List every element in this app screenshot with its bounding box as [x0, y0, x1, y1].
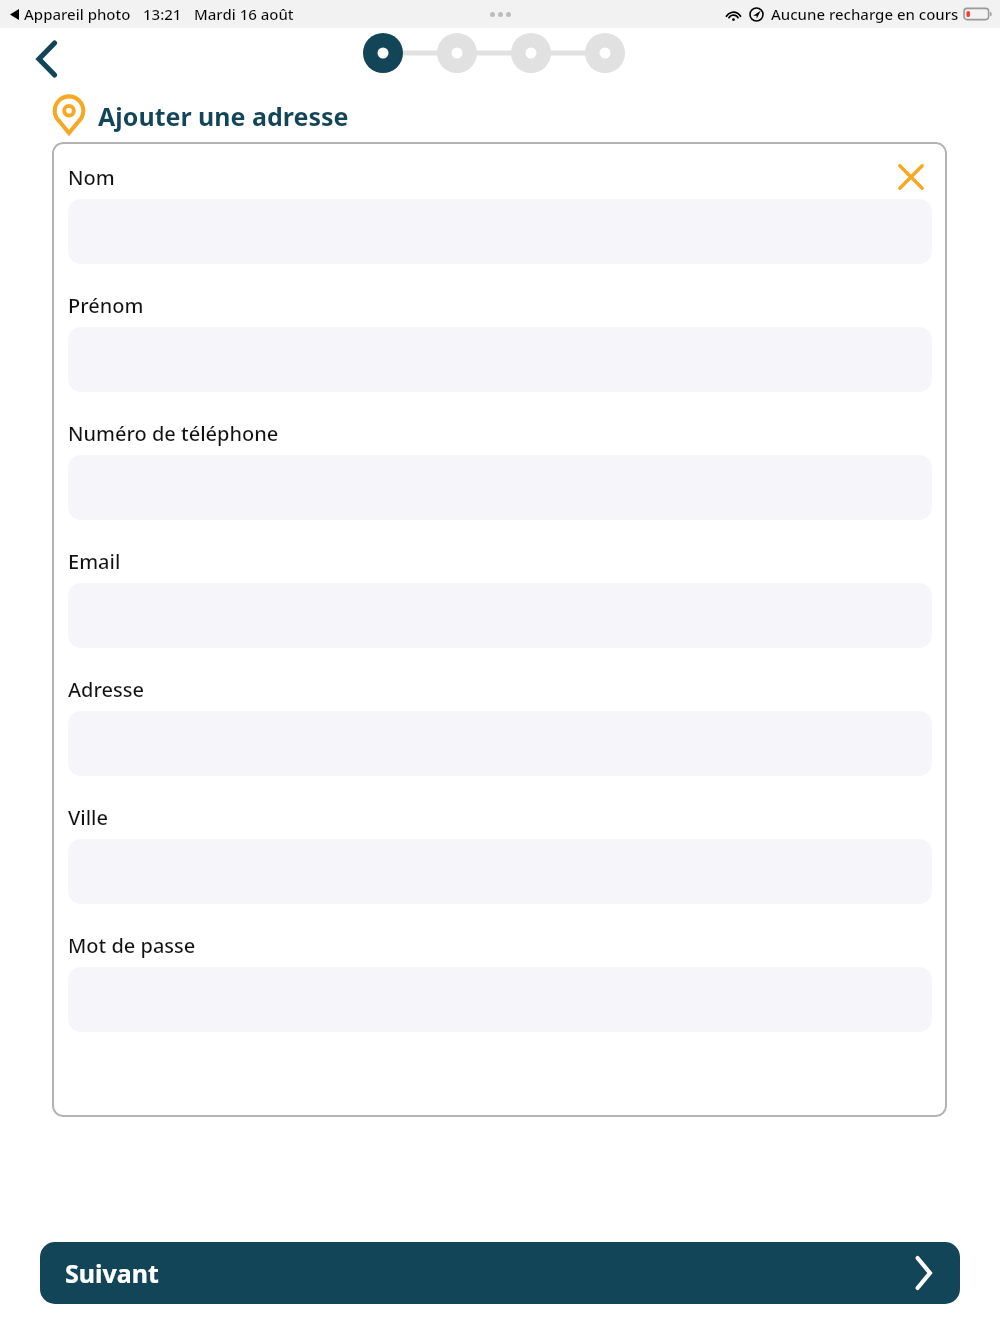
staticText: Nom [68, 164, 115, 190]
staticText: Aucune recharge en cours [771, 4, 959, 24]
staticText: Suivant [65, 1256, 159, 1290]
staticText: Appareil photo [24, 4, 131, 24]
staticText: Mardi 16 août [194, 4, 294, 24]
staticText: Numéro de téléphone [68, 420, 279, 446]
button[interactable]: Fermer [890, 164, 932, 190]
staticText: 13:21 [143, 4, 182, 24]
staticText: Mot de passe [68, 932, 196, 958]
staticText: Prénom [68, 292, 144, 318]
staticText: Ville [68, 804, 108, 830]
staticText: Email [68, 548, 121, 574]
button[interactable]: Suivant [40, 1242, 960, 1304]
staticText: Adresse [68, 676, 144, 702]
staticText: Ajouter une adresse [98, 99, 349, 133]
button[interactable]: Retour [20, 32, 74, 86]
